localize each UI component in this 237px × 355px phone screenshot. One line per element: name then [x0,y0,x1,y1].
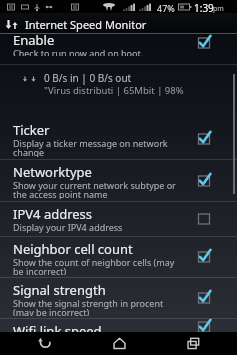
staticText: IPV4 address [13,205,93,223]
staticText: 0 B/s in | 0 B/s out [44,71,132,85]
staticText: Internet Speed Monitor [25,17,147,32]
staticText: Display your IPV4 address [13,221,123,233]
staticText: Display a ticker message on network chan… [13,137,180,157]
staticText: pm [213,4,224,14]
button[interactable]: Back [14,332,74,355]
button[interactable]: Networktype [0,160,237,201]
staticText: Wifi link speed [13,322,102,332]
button[interactable]: Signal strength [0,278,237,318]
staticText: Enable [13,34,55,49]
button[interactable]: 0 B/s in | 0 B/s out [0,65,237,118]
button[interactable]: Toggle [194,34,214,53]
button[interactable]: Toggle [194,288,214,308]
staticText: Signal strength [13,281,106,299]
staticText: Neighbor cell count [13,240,133,258]
button[interactable]: Neighbor cell count [0,237,237,277]
staticText: Ticker [13,121,50,139]
staticText: "Virus distributi | 65Mbit | 98% [44,84,184,97]
button[interactable]: Wifi link speed [0,319,237,332]
button[interactable]: Toggle [194,129,214,149]
staticText: Networktype [13,163,92,181]
staticText: Show the signal strength in procent (may… [13,297,180,316]
button[interactable]: Toggle [194,319,214,332]
staticText: Show the count of neighbor cells (may be… [13,256,180,275]
other: App icon [4,17,20,33]
button[interactable]: Ticker [0,118,237,159]
button[interactable]: Recent apps [163,332,223,355]
button[interactable]: Toggle [194,247,214,267]
staticText: 47% [157,2,175,14]
button[interactable]: Home [89,332,149,355]
staticText: Check to run now and on boot. [13,47,144,56]
button[interactable]: Toggle [194,209,214,229]
staticText: Show your current network subtype or the… [13,179,180,199]
button[interactable]: IPV4 address [0,202,237,236]
button[interactable]: Enable [0,34,237,58]
button[interactable]: Toggle [194,171,214,191]
staticText: 1:39 [194,1,214,14]
